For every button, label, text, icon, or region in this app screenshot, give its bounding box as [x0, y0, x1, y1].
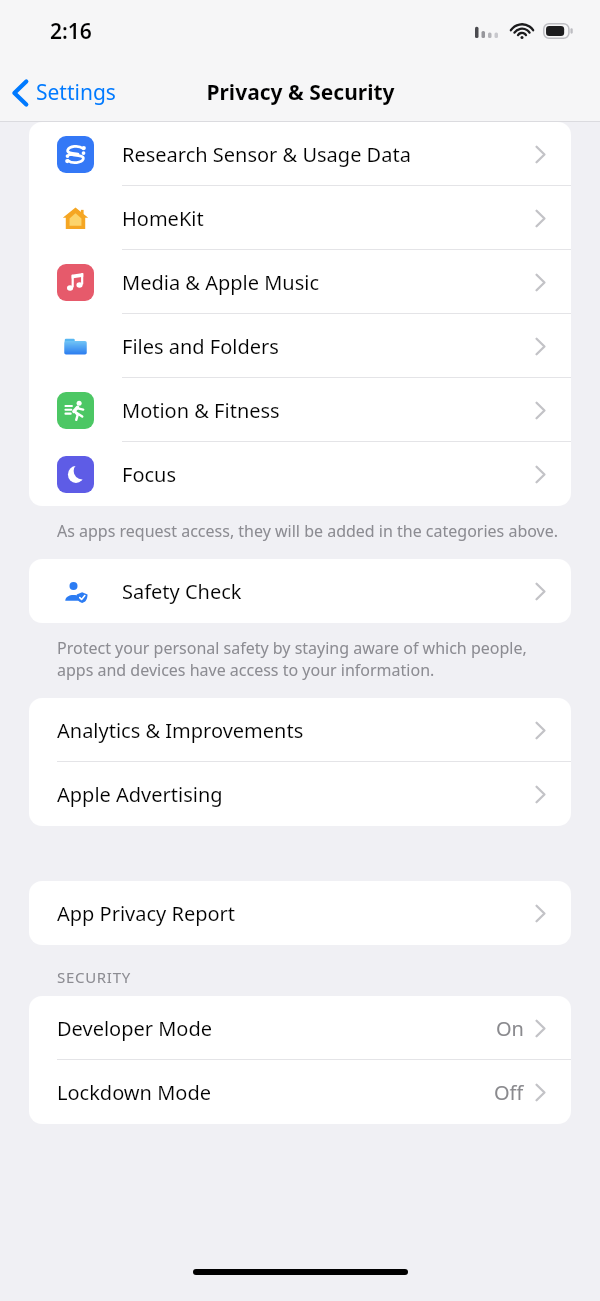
button[interactable]: App Privacy Report: [29, 881, 571, 945]
staticText: App Privacy Report: [57, 900, 236, 927]
other: Open: [535, 1083, 546, 1102]
staticText: Off: [494, 1079, 524, 1106]
staticText: Apple Advertising: [57, 781, 223, 808]
other: Open: [535, 337, 546, 356]
staticText: SECURITY: [57, 967, 131, 987]
button[interactable]: Focus: [29, 442, 571, 506]
staticText: Lockdown Mode: [57, 1079, 211, 1106]
staticText: Media & Apple Music: [122, 269, 319, 296]
button[interactable]: Apple Advertising: [29, 762, 571, 826]
other: Open: [535, 582, 546, 601]
staticText: Developer Mode: [57, 1015, 213, 1042]
button[interactable]: Files and Folders: [29, 314, 571, 378]
staticText: HomeKit: [122, 205, 204, 232]
staticText: Protect your personal safety by staying …: [57, 637, 565, 681]
other: Open: [535, 209, 546, 228]
button[interactable]: Safety Check: [29, 559, 571, 623]
other: Open: [535, 1019, 546, 1038]
button[interactable]: Lockdown Mode: [29, 1060, 571, 1124]
staticText: Motion & Fitness: [122, 397, 280, 424]
staticText: Analytics & Improvements: [57, 717, 304, 744]
other: Open: [535, 145, 546, 164]
button[interactable]: Developer Mode: [29, 996, 571, 1060]
staticText: Privacy & Security: [206, 78, 395, 107]
staticText: Safety Check: [122, 578, 242, 605]
staticText: Settings: [36, 78, 116, 107]
other: Open: [535, 465, 546, 484]
button[interactable]: Analytics & Improvements: [29, 698, 571, 762]
staticText: 2:16: [50, 17, 92, 46]
staticText: On: [496, 1015, 524, 1042]
button[interactable]: Settings: [0, 70, 126, 115]
button[interactable]: Motion & Fitness: [29, 378, 571, 442]
other: Open: [535, 721, 546, 740]
button[interactable]: Media & Apple Music: [29, 250, 571, 314]
button[interactable]: HomeKit: [29, 186, 571, 250]
other: Open: [535, 904, 546, 923]
staticText: Research Sensor & Usage Data: [122, 141, 411, 168]
staticText: As apps request access, they will be add…: [57, 520, 565, 542]
button[interactable]: Research Sensor & Usage Data: [29, 122, 571, 186]
other: Open: [535, 401, 546, 420]
other: Open: [535, 273, 546, 292]
staticText: Focus: [122, 461, 177, 488]
staticText: Files and Folders: [122, 333, 279, 360]
other: Open: [535, 785, 546, 804]
